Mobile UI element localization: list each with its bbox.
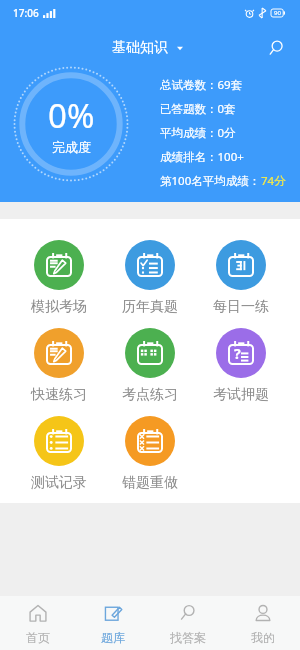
button[interactable]: 题库 [75,596,150,650]
staticText: 模拟考场 [31,298,87,316]
staticText: 考试押题 [213,386,269,404]
staticText: 每日一练 [213,298,269,316]
staticText: 90 [274,9,281,17]
staticText: 题库 [101,630,125,645]
button[interactable]: 测试记录 [14,416,104,492]
staticText: 17:06 [13,6,39,20]
button[interactable]: 历年真题 [104,240,195,316]
staticText: 找答案 [170,630,206,645]
staticText: 平均成绩：0分 [160,125,236,141]
staticText: 74分 [261,173,286,189]
staticText: 第100名平均成绩： [160,173,261,189]
staticText: 0% [48,93,95,138]
staticText: 已答题数：0套 [160,101,236,117]
button[interactable]: 基础知识 [106,35,189,61]
button[interactable]: ? [195,328,286,404]
button[interactable]: 找答案 [150,596,225,650]
button[interactable]: 每日一练 [195,240,286,316]
staticText: 基础知识 [112,39,168,57]
staticText: 快速练习 [31,386,87,404]
button[interactable]: 首页 [0,596,75,650]
staticText: 测试记录 [31,474,87,492]
staticText: 总试卷数：69套 [160,77,243,93]
staticText: 成绩排名：100+ [160,149,244,165]
staticText: 首页 [26,630,50,645]
button[interactable]: 我的 [225,596,300,650]
button[interactable]: 考点练习 [104,328,195,404]
staticText: 错题重做 [122,474,178,492]
button[interactable]: 模拟考场 [14,240,104,316]
staticText: 我的 [251,630,275,645]
button[interactable]: Search [260,32,292,64]
staticText: 考点练习 [122,386,178,404]
staticText: 完成度 [52,139,91,155]
staticText: ? [234,344,241,363]
button[interactable]: 快速练习 [14,328,104,404]
staticText: 历年真题 [122,298,178,316]
button[interactable]: 错题重做 [104,416,195,492]
